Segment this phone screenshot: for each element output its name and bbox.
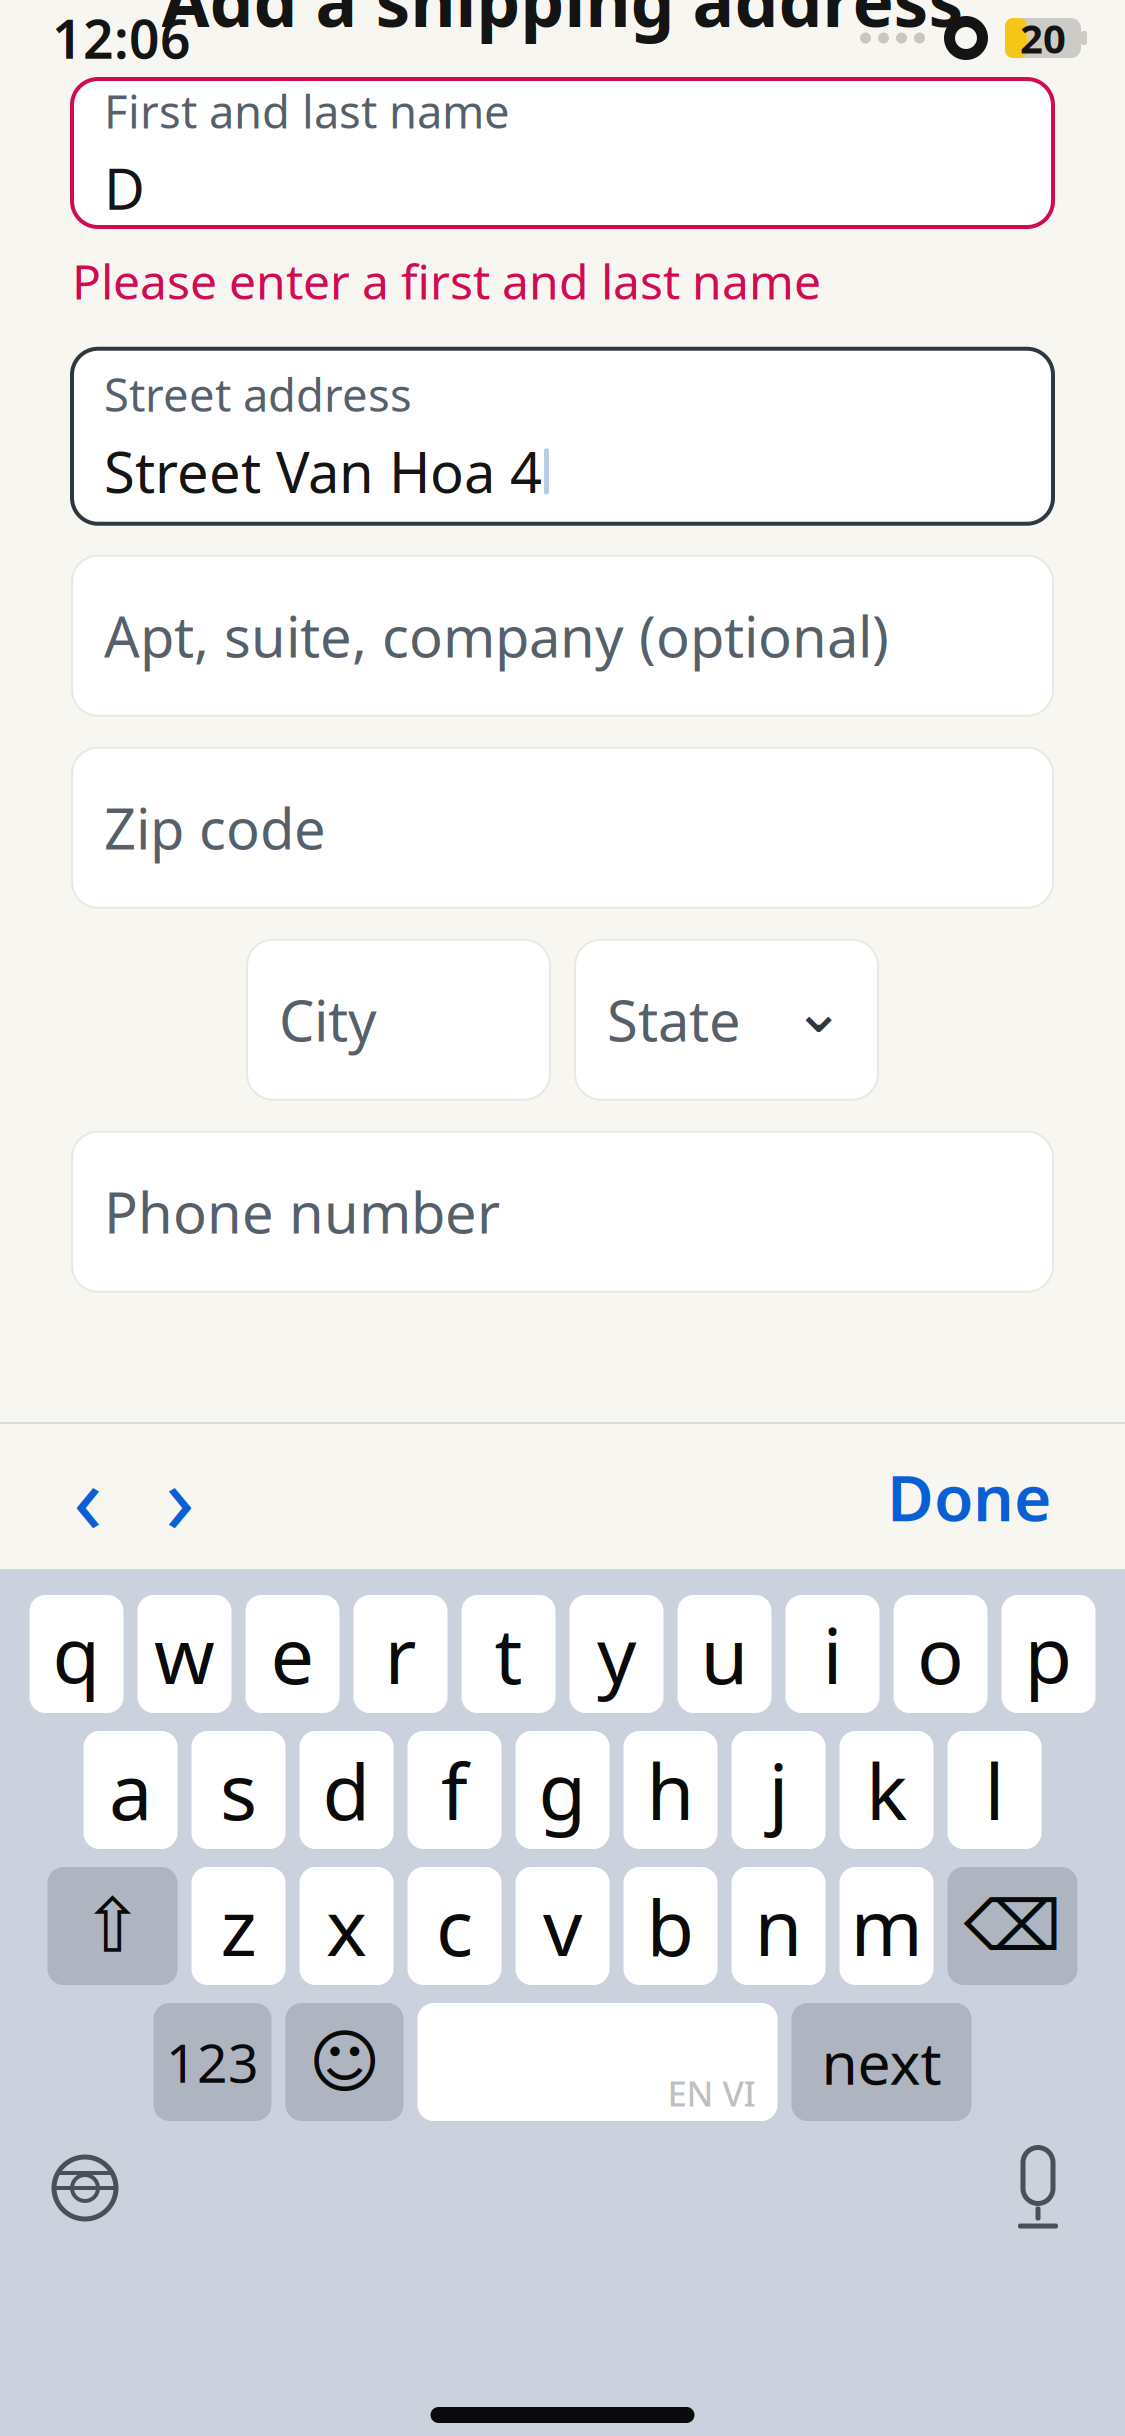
button[interactable]: Numbers bbox=[153, 2003, 271, 2121]
staticText: ⇧ bbox=[81, 1884, 144, 1968]
staticText: Street address bbox=[104, 364, 412, 424]
button[interactable]: Phone number bbox=[72, 1132, 1053, 1292]
button[interactable]: y bbox=[569, 1595, 663, 1713]
button[interactable]: next bbox=[791, 2003, 971, 2121]
staticText: g bbox=[538, 1739, 586, 1841]
staticText: w bbox=[154, 1603, 215, 1705]
button[interactable]: t bbox=[461, 1595, 555, 1713]
staticText: f bbox=[441, 1739, 468, 1841]
staticText: j bbox=[768, 1739, 788, 1841]
staticText: 12:06 bbox=[52, 3, 191, 73]
staticText: y bbox=[597, 1603, 636, 1705]
button[interactable]: v bbox=[515, 1867, 609, 1985]
staticText: n bbox=[754, 1875, 802, 1977]
staticText: e bbox=[270, 1603, 314, 1705]
button[interactable]: Zip code bbox=[72, 748, 1053, 908]
button[interactable]: City bbox=[247, 940, 550, 1100]
staticText: a bbox=[109, 1739, 152, 1841]
staticText: City bbox=[279, 983, 377, 1057]
button[interactable]: State bbox=[575, 940, 878, 1100]
staticText: r bbox=[384, 1603, 416, 1705]
staticText: Phone number bbox=[104, 1175, 500, 1249]
button[interactable]: Apt, suite, company (optional) bbox=[72, 556, 1053, 716]
staticText: State bbox=[607, 983, 741, 1057]
staticText: ‹ bbox=[73, 1433, 103, 1560]
staticText: p bbox=[1024, 1603, 1072, 1705]
button[interactable]: Dictation bbox=[993, 2143, 1083, 2233]
staticText: EN VI bbox=[667, 2070, 755, 2116]
button[interactable]: g bbox=[515, 1731, 609, 1849]
button[interactable]: j bbox=[731, 1731, 825, 1849]
staticText: m bbox=[850, 1875, 922, 1977]
staticText: c bbox=[436, 1875, 473, 1977]
button[interactable]: s bbox=[191, 1731, 285, 1849]
button[interactable]: h bbox=[623, 1731, 717, 1849]
button[interactable]: u bbox=[677, 1595, 771, 1713]
staticText: Add a shipping address bbox=[161, 0, 963, 46]
staticText: 20 bbox=[1020, 11, 1066, 64]
staticText: D bbox=[104, 151, 145, 225]
staticText: 123 bbox=[166, 2027, 259, 2097]
staticText: x bbox=[326, 1875, 367, 1977]
staticText: l bbox=[984, 1739, 1004, 1841]
button[interactable]: Next field bbox=[134, 1450, 226, 1542]
button[interactable]: Next keyboard bbox=[40, 2143, 130, 2233]
staticText: k bbox=[866, 1739, 907, 1841]
staticText: o bbox=[917, 1603, 964, 1705]
button[interactable]: e bbox=[245, 1595, 339, 1713]
button[interactable]: c bbox=[407, 1867, 501, 1985]
staticText: Please enter a first and last name bbox=[72, 249, 821, 313]
staticText: q bbox=[52, 1603, 100, 1705]
button[interactable]: First and last name bbox=[72, 79, 1053, 227]
button[interactable]: q bbox=[29, 1595, 123, 1713]
button[interactable]: Delete bbox=[947, 1867, 1077, 1985]
staticText: z bbox=[220, 1875, 256, 1977]
button[interactable]: d bbox=[299, 1731, 393, 1849]
button[interactable]: w bbox=[137, 1595, 231, 1713]
button[interactable]: Street address bbox=[72, 349, 1053, 524]
button[interactable]: x bbox=[299, 1867, 393, 1985]
button[interactable]: p bbox=[1001, 1595, 1095, 1713]
staticText: First and last name bbox=[104, 81, 510, 141]
staticText: ⌄ bbox=[793, 976, 844, 1045]
button[interactable]: l bbox=[947, 1731, 1041, 1849]
button[interactable]: n bbox=[731, 1867, 825, 1985]
button[interactable]: Shift bbox=[47, 1867, 177, 1985]
button[interactable]: a bbox=[83, 1731, 177, 1849]
button[interactable]: r bbox=[353, 1595, 447, 1713]
staticText: Zip code bbox=[104, 791, 326, 865]
staticText: › bbox=[165, 1433, 195, 1560]
button[interactable]: Emoji bbox=[285, 2003, 403, 2121]
staticText: ☺ bbox=[308, 2023, 380, 2101]
button[interactable]: Done bbox=[887, 1454, 1063, 1539]
staticText: next bbox=[821, 2023, 941, 2101]
button[interactable]: z bbox=[191, 1867, 285, 1985]
button[interactable]: k bbox=[839, 1731, 933, 1849]
staticText: ⌫ bbox=[963, 1887, 1061, 1965]
button[interactable]: m bbox=[839, 1867, 933, 1985]
button[interactable]: i bbox=[785, 1595, 879, 1713]
button[interactable]: b bbox=[623, 1867, 717, 1985]
staticText: u bbox=[700, 1603, 748, 1705]
staticText: Apt, suite, company (optional) bbox=[104, 599, 889, 673]
button[interactable]: o bbox=[893, 1595, 987, 1713]
button[interactable]: f bbox=[407, 1731, 501, 1849]
staticText: h bbox=[646, 1739, 694, 1841]
button[interactable]: Previous field bbox=[42, 1450, 134, 1542]
staticText: d bbox=[322, 1739, 370, 1841]
staticText: v bbox=[543, 1875, 582, 1977]
staticText: t bbox=[494, 1603, 522, 1705]
staticText: s bbox=[220, 1739, 257, 1841]
staticText: Done bbox=[887, 1454, 1051, 1539]
staticText: Street Van Hoa 4 bbox=[104, 434, 542, 509]
button[interactable]: space bbox=[417, 2003, 777, 2121]
staticText: i bbox=[822, 1603, 842, 1705]
staticText: b bbox=[646, 1875, 694, 1977]
